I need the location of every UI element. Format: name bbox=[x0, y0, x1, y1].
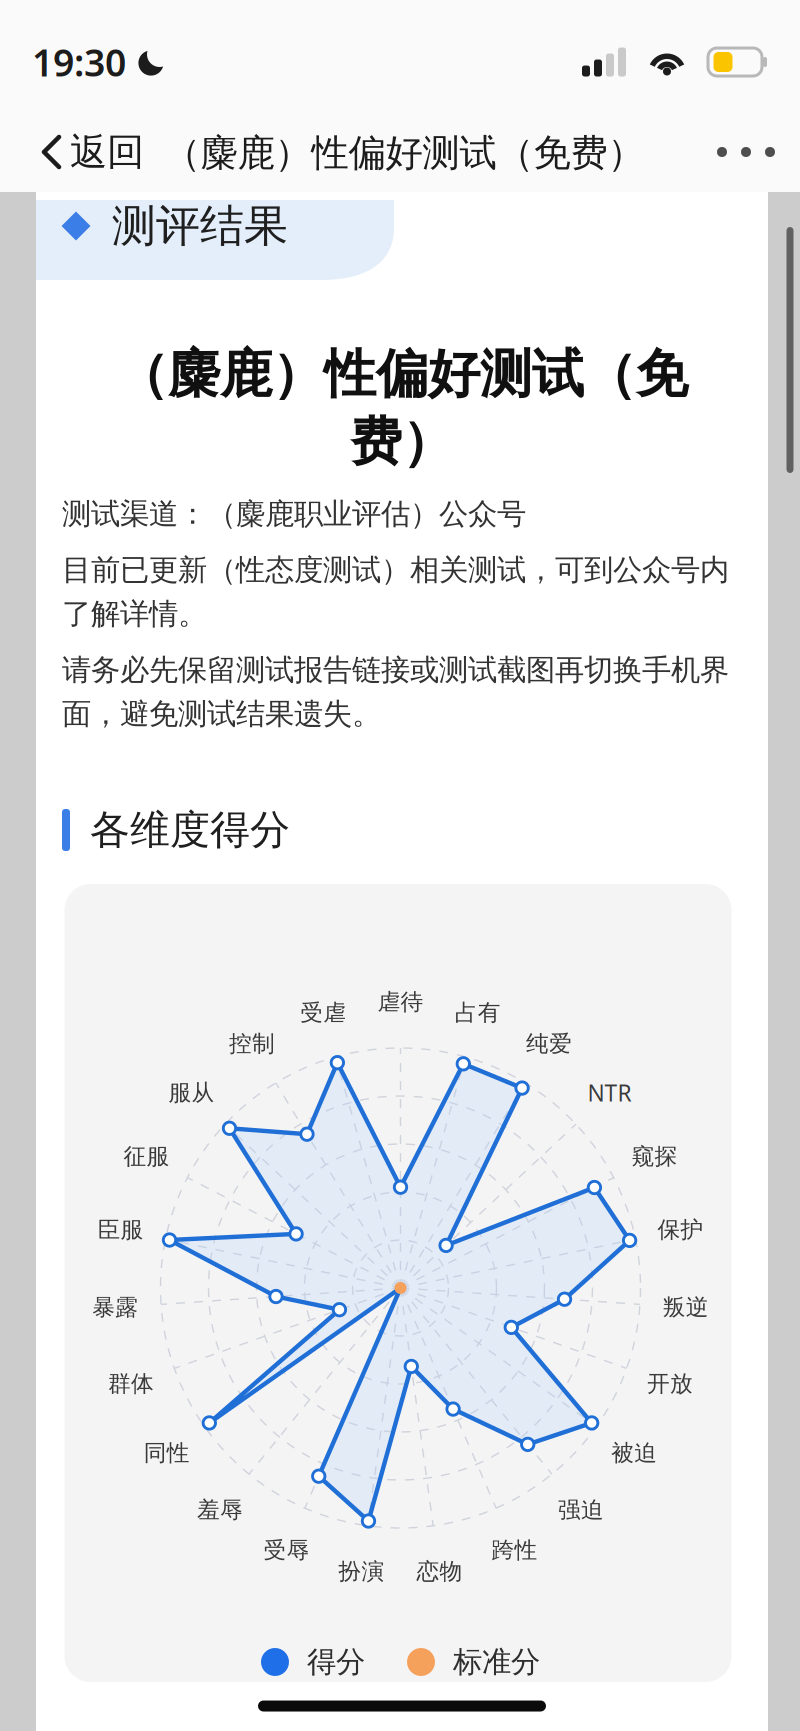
staticText: 控制 bbox=[229, 1030, 275, 1057]
staticText: 被迫 bbox=[611, 1439, 657, 1467]
staticText: 受虐 bbox=[300, 999, 346, 1026]
staticText: 羞辱 bbox=[197, 1496, 243, 1524]
staticText: 了解详情。 bbox=[62, 596, 207, 632]
staticText: （麋鹿）性偏好测试（免费） bbox=[163, 130, 644, 176]
button[interactable]: More options bbox=[691, 112, 800, 192]
staticText: 目前已更新（性态度测试）相关测试，可到公众号内 bbox=[62, 552, 729, 588]
staticText: 跨性 bbox=[491, 1536, 537, 1564]
staticText: 强迫 bbox=[558, 1496, 604, 1524]
staticText: 19:30 bbox=[32, 37, 126, 87]
staticText: 纯爱 bbox=[526, 1030, 572, 1057]
staticText: 扮演 bbox=[339, 1557, 385, 1585]
staticText: 暴露 bbox=[92, 1294, 138, 1321]
staticText: 服从 bbox=[168, 1079, 214, 1107]
staticText: 叛逆 bbox=[663, 1294, 709, 1321]
staticText: 请务必先保留测试报告链接或测试截图再切换手机界 bbox=[62, 652, 729, 688]
staticText: 得分 bbox=[307, 1644, 365, 1680]
staticText: 返回 bbox=[70, 129, 144, 175]
staticText: 受辱 bbox=[264, 1536, 310, 1564]
staticText: 测试渠道：（麋鹿职业评估）公众号 bbox=[62, 496, 526, 532]
staticText: 占有 bbox=[455, 999, 501, 1026]
staticText: NTR bbox=[587, 1078, 631, 1108]
staticText: 各维度得分 bbox=[90, 805, 290, 854]
staticText: 标准分 bbox=[453, 1644, 540, 1680]
staticText: 费） bbox=[350, 410, 454, 474]
staticText: 窥探 bbox=[631, 1142, 677, 1170]
staticText: 臣服 bbox=[97, 1216, 143, 1244]
staticText: （麋鹿）性偏好测试（免 bbox=[116, 342, 688, 406]
staticText: 同性 bbox=[144, 1439, 190, 1467]
staticText: 征服 bbox=[124, 1142, 170, 1170]
staticText: 虐待 bbox=[377, 988, 423, 1016]
staticText: 测评结果 bbox=[112, 199, 288, 253]
staticText: 面，避免测试结果遗失。 bbox=[62, 696, 381, 732]
staticText: 群体 bbox=[108, 1370, 154, 1398]
button[interactable]: 返回 bbox=[16, 112, 168, 192]
staticText: 恋物 bbox=[416, 1557, 462, 1585]
staticText: 保护 bbox=[657, 1216, 703, 1244]
staticText: 开放 bbox=[647, 1370, 693, 1398]
